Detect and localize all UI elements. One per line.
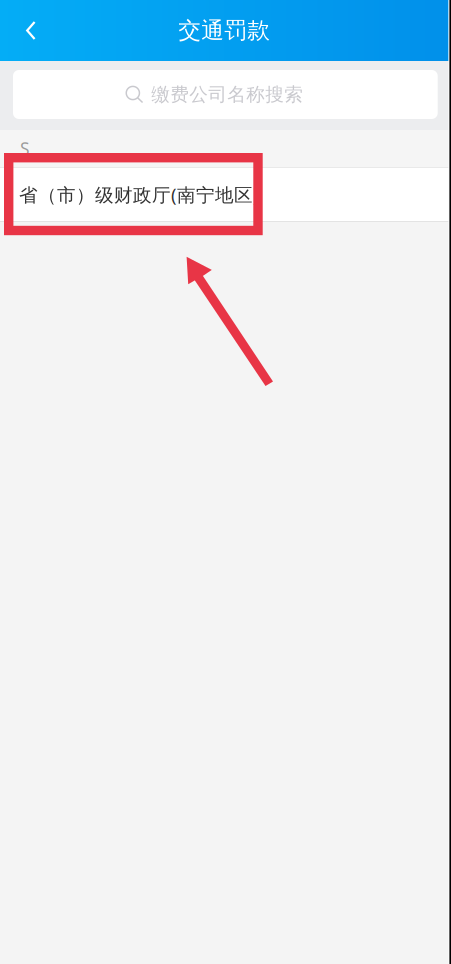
staticText: 缴费公司名称搜索 xyxy=(151,83,303,106)
button[interactable]: Back xyxy=(0,0,52,61)
staticText: S xyxy=(20,137,30,160)
button[interactable]: 省（市）级财政厅(南宁地区) xyxy=(0,168,449,221)
staticText: 省（市）级财政厅(南宁地区) xyxy=(19,182,259,207)
staticText: 交通罚款 xyxy=(178,17,270,44)
button[interactable]: 缴费公司名称搜索 xyxy=(0,61,449,130)
